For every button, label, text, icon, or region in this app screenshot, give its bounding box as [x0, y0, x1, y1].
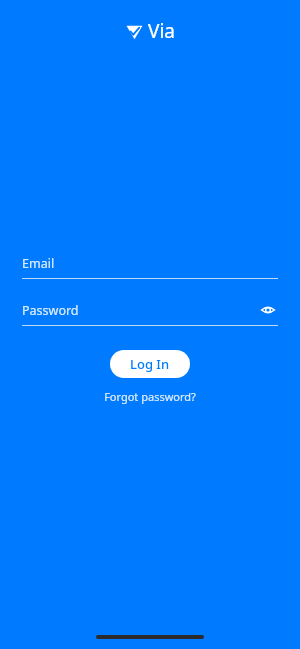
staticText: Email: [22, 255, 278, 272]
button[interactable]: Email: [22, 252, 278, 279]
button[interactable]: Log In: [110, 350, 190, 378]
button[interactable]: Show password: [258, 300, 278, 320]
button[interactable]: Forgot password?: [98, 386, 202, 407]
staticText: Log In: [130, 355, 170, 373]
staticText: Via: [148, 18, 175, 44]
button[interactable]: Password: [22, 299, 278, 326]
staticText: Forgot password?: [104, 389, 196, 404]
staticText: Password: [22, 302, 258, 319]
